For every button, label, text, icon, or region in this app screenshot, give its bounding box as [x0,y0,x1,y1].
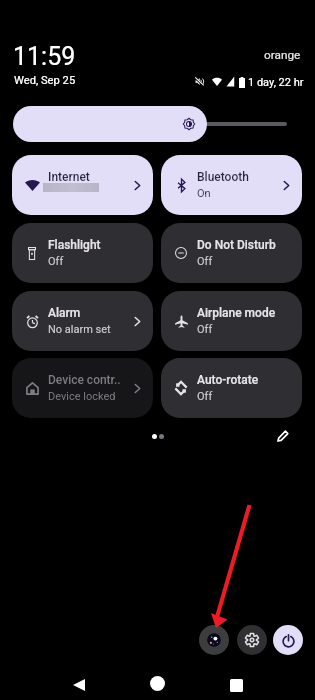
button[interactable]: Edit tiles [271,425,295,447]
button[interactable]: Auto-rotate [161,358,302,418]
button[interactable]: Settings [237,625,267,655]
staticText: Off [197,390,293,403]
button[interactable]: Power [273,625,303,655]
button[interactable]: Airplane mode [161,291,302,351]
staticText: 11:59 [13,42,76,71]
button[interactable]: Brightness [0,106,315,142]
staticText: Off [197,323,293,336]
staticText: Device locked [48,390,144,403]
button[interactable]: Flashlight [12,223,153,283]
staticText: Internet [48,170,144,184]
staticText: Alarm [48,306,144,320]
staticText: Wed, Sep 25 [14,74,76,87]
button[interactable]: User account [199,625,229,655]
staticText: orange [264,48,301,62]
staticText: Device contr.. [48,373,144,387]
button[interactable]: Internet [12,155,153,215]
staticText: Auto-rotate [197,373,293,387]
staticText: Bluetooth [197,170,293,184]
button[interactable]: Back [69,675,89,695]
staticText: 1 day, 22 hr [248,76,304,89]
button[interactable]: Do Not Disturb [161,223,302,283]
staticText: Flashlight [48,238,144,252]
staticText: On [197,187,293,200]
staticText: Airplane mode [197,306,293,320]
button[interactable]: Home [147,673,167,693]
staticText: Do Not Disturb [197,238,293,252]
staticText: No alarm set [48,323,144,336]
button[interactable]: Alarm [12,291,153,351]
staticText: Off [48,255,144,268]
button[interactable]: Device contr.. [12,358,153,418]
button[interactable]: Bluetooth [161,155,302,215]
button[interactable]: Recent apps [226,675,246,695]
staticText: Off [197,255,293,268]
